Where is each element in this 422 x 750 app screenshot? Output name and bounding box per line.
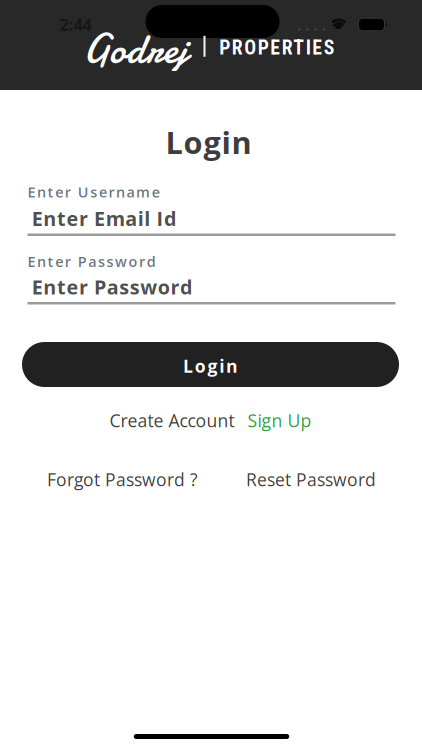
button[interactable]: Enter Password	[0, 273, 422, 306]
staticText: PROPERTIES	[219, 36, 335, 59]
staticText: 2:44	[59, 13, 91, 36]
staticText: Enter Password	[32, 273, 192, 300]
button[interactable]: Sign Up	[247, 408, 311, 432]
staticText: Enter Username	[27, 182, 160, 202]
staticText: Godrej	[83, 21, 188, 77]
button[interactable]: Reset Password	[246, 468, 376, 491]
staticText: Reset Password	[246, 468, 376, 491]
staticText: Login	[165, 121, 251, 163]
staticText: Login	[183, 354, 238, 378]
staticText: Enter Password	[27, 252, 156, 271]
button[interactable]: Enter Email Id	[0, 205, 422, 238]
staticText: Enter Email Id	[32, 205, 176, 232]
button[interactable]: Login	[22, 342, 399, 387]
button[interactable]: Forgot Password ?	[47, 468, 198, 491]
staticText: Sign Up	[247, 408, 311, 432]
staticText: Create Account	[109, 408, 234, 432]
staticText: Forgot Password ?	[47, 468, 198, 491]
